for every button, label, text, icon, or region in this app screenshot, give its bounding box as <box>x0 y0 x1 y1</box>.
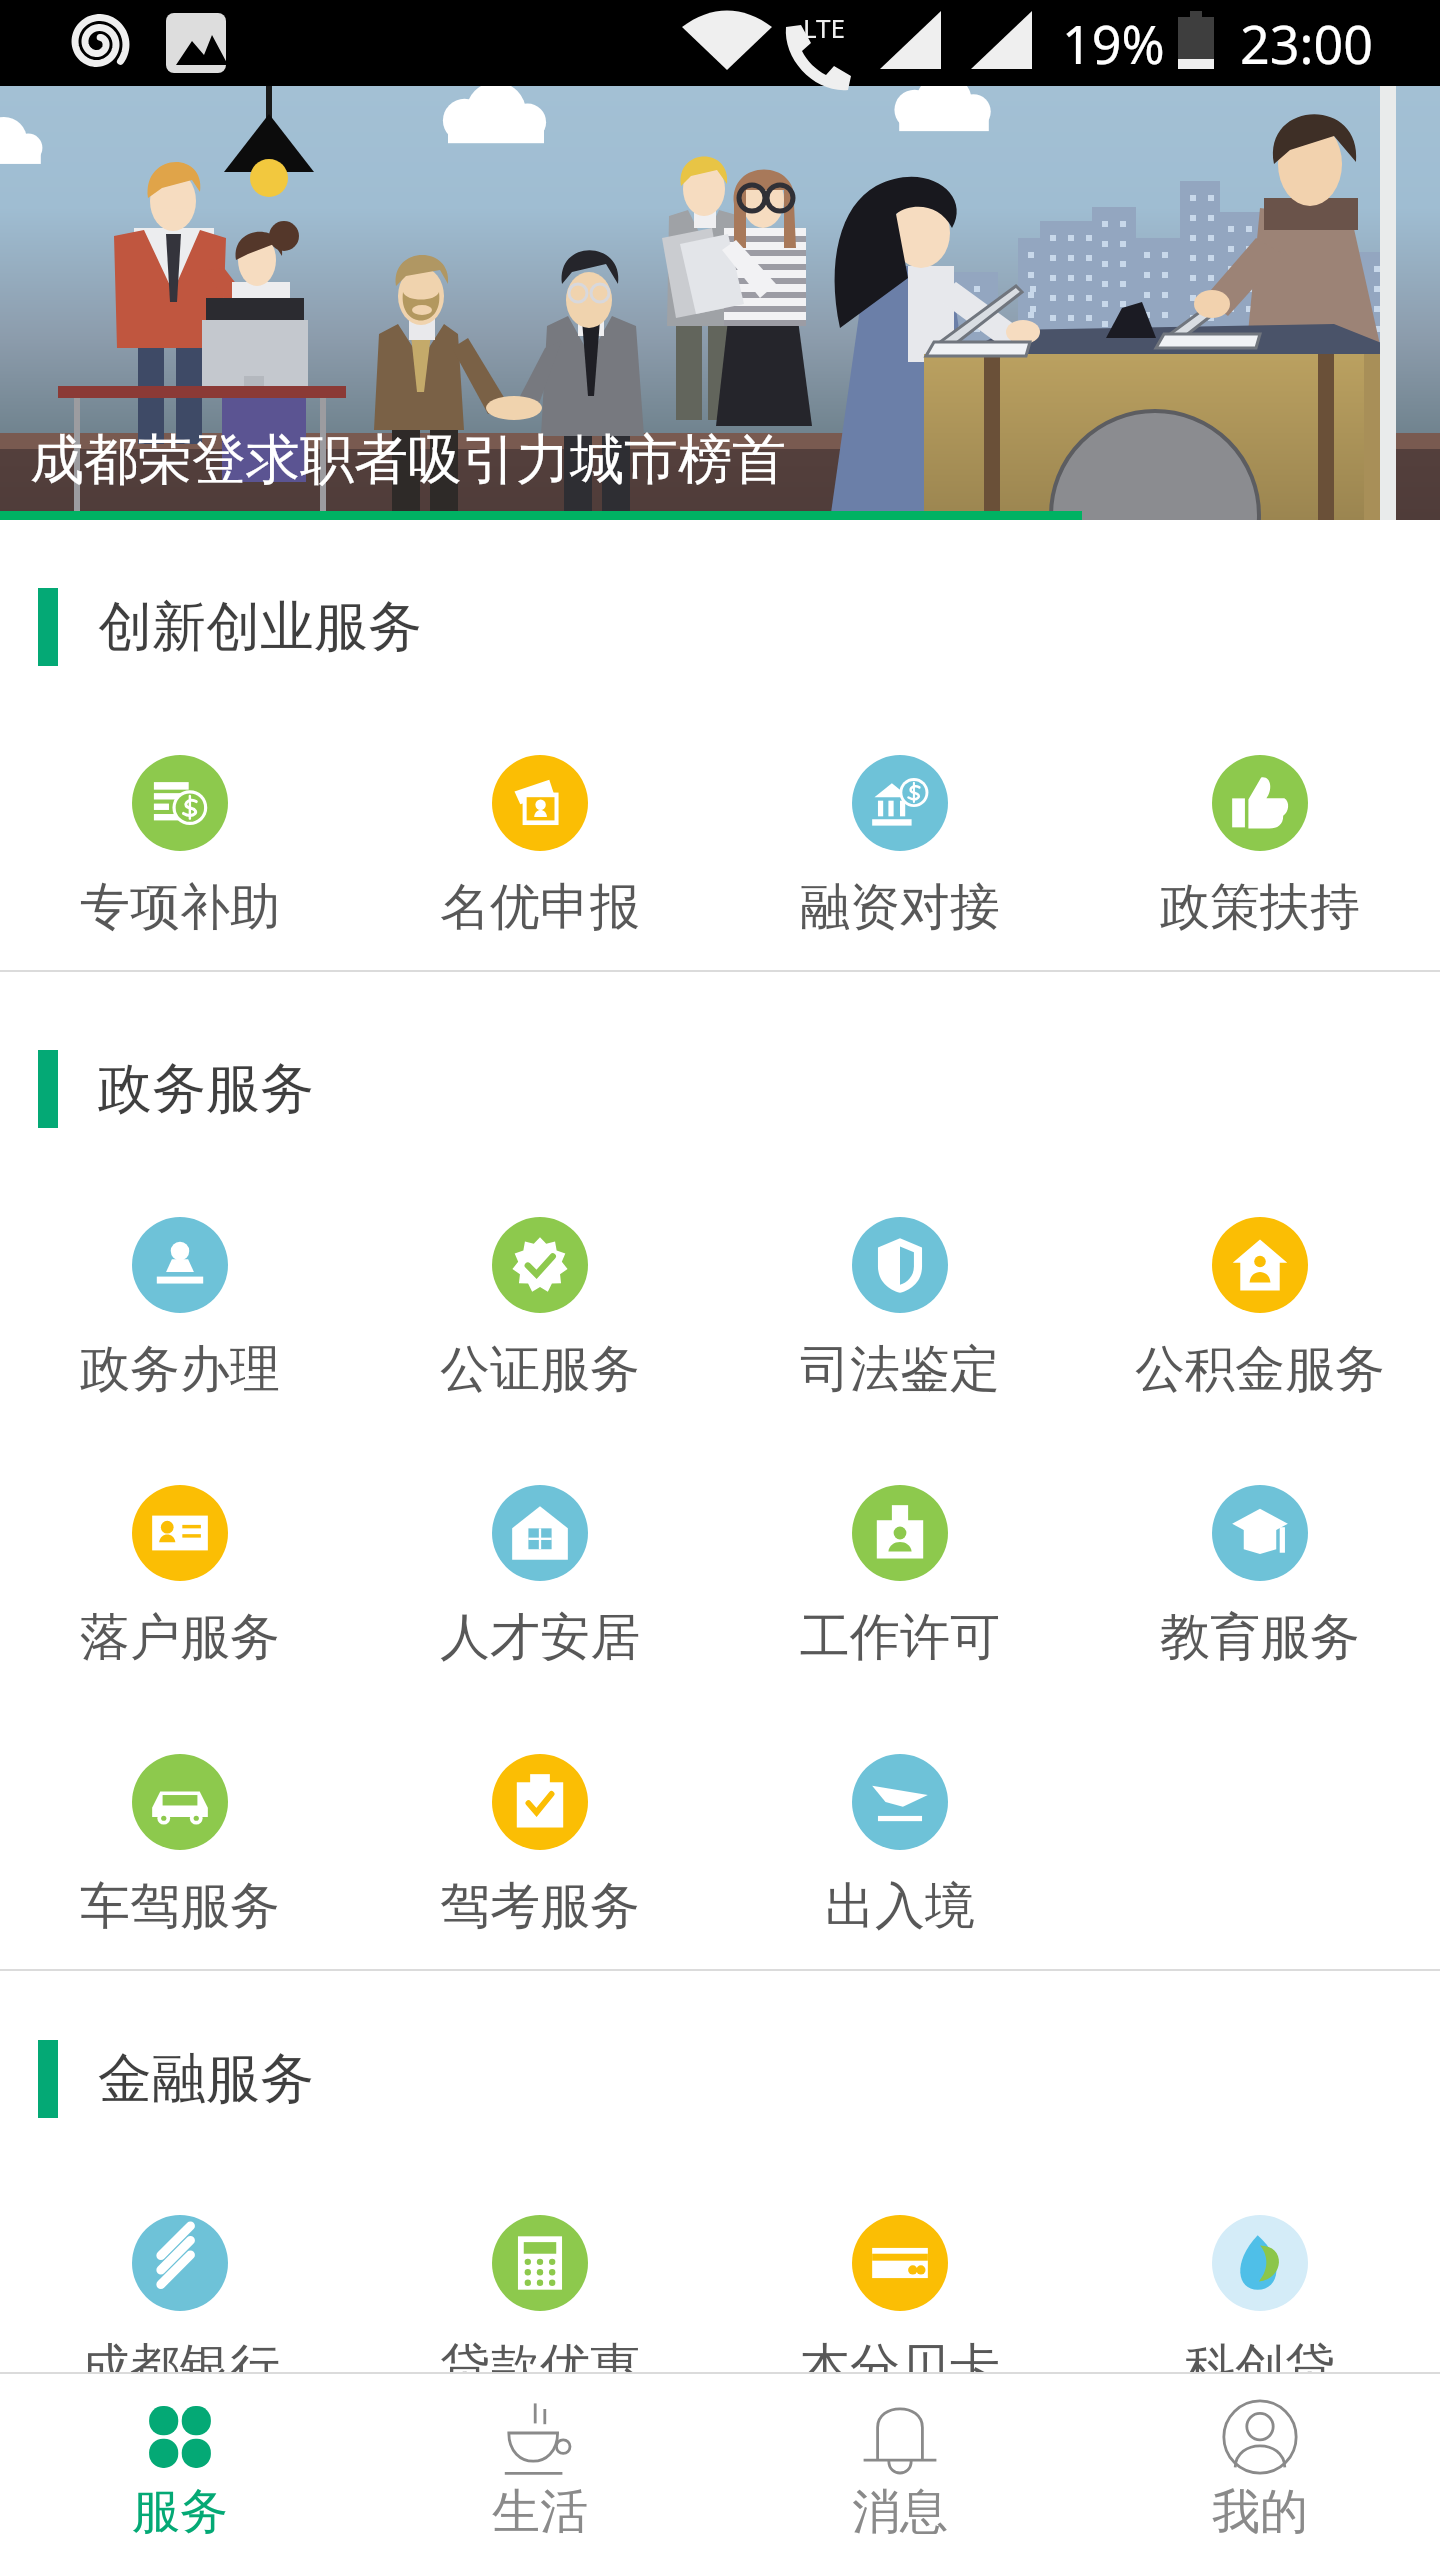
button[interactable]: 驾考服务 <box>360 1754 720 1938</box>
button[interactable]: 服务 <box>0 2374 360 2560</box>
staticText: LTE <box>803 10 846 45</box>
staticText: 成都银行 <box>80 2336 280 2399</box>
button[interactable]: 成都荣登求职者吸引力城市榜首 <box>0 86 1440 520</box>
staticText: 融资对接 <box>800 876 1000 939</box>
button[interactable]: 本分贝卡 <box>720 2215 1080 2399</box>
staticText: 落户服务 <box>80 1606 280 1669</box>
staticText: 政务办理 <box>80 1338 280 1401</box>
staticText: 成都荣登求职者吸引力城市榜首 <box>30 426 786 494</box>
button[interactable]: 名优申报 <box>360 755 720 939</box>
staticText: 消息 <box>852 2482 948 2542</box>
button[interactable]: 政务办理 <box>0 1217 360 1401</box>
button[interactable]: 专项补助 <box>0 755 360 939</box>
staticText: 金融服务 <box>98 2045 314 2113</box>
staticText: 名优申报 <box>440 876 640 939</box>
staticText: 司法鉴定 <box>800 1338 1000 1401</box>
button[interactable]: 贷款优惠 <box>360 2215 720 2399</box>
button[interactable]: 公积金服务 <box>1080 1217 1440 1401</box>
staticText: 创新创业服务 <box>98 593 422 661</box>
button[interactable]: 成都银行 <box>0 2215 360 2399</box>
staticText: 政策扶持 <box>1160 876 1360 939</box>
staticText: 科创贷 <box>1185 2336 1335 2399</box>
staticText: 公积金服务 <box>1135 1338 1385 1401</box>
button[interactable]: 落户服务 <box>0 1485 360 1669</box>
staticText: 我的 <box>1212 2482 1308 2542</box>
staticText: 贷款优惠 <box>440 2336 640 2399</box>
staticText: 公证服务 <box>440 1338 640 1401</box>
button[interactable]: 融资对接 <box>720 755 1080 939</box>
staticText: 教育服务 <box>1160 1606 1360 1669</box>
staticText: 驾考服务 <box>440 1875 640 1938</box>
staticText: 人才安居 <box>440 1606 640 1669</box>
button[interactable]: 车驾服务 <box>0 1754 360 1938</box>
button[interactable]: 工作许可 <box>720 1485 1080 1669</box>
button[interactable]: 公证服务 <box>360 1217 720 1401</box>
staticText: 政务服务 <box>98 1055 314 1123</box>
button[interactable]: 出入境 <box>720 1754 1080 1938</box>
button[interactable]: 消息 <box>720 2374 1080 2560</box>
staticText: 车驾服务 <box>80 1875 280 1938</box>
button[interactable]: 司法鉴定 <box>720 1217 1080 1401</box>
staticText: 出入境 <box>825 1875 975 1938</box>
staticText: 19% <box>1062 8 1165 79</box>
button[interactable]: 科创贷 <box>1080 2215 1440 2399</box>
staticText: 本分贝卡 <box>800 2336 1000 2399</box>
button[interactable]: 人才安居 <box>360 1485 720 1669</box>
staticText: 专项补助 <box>80 876 280 939</box>
button[interactable]: 生活 <box>360 2374 720 2560</box>
button[interactable]: 教育服务 <box>1080 1485 1440 1669</box>
staticText: 工作许可 <box>800 1606 1000 1669</box>
staticText: 23:00 <box>1240 8 1373 79</box>
button[interactable]: 我的 <box>1080 2374 1440 2560</box>
staticText: 服务 <box>132 2482 228 2542</box>
button[interactable]: 政策扶持 <box>1080 755 1440 939</box>
staticText: 生活 <box>492 2482 588 2542</box>
